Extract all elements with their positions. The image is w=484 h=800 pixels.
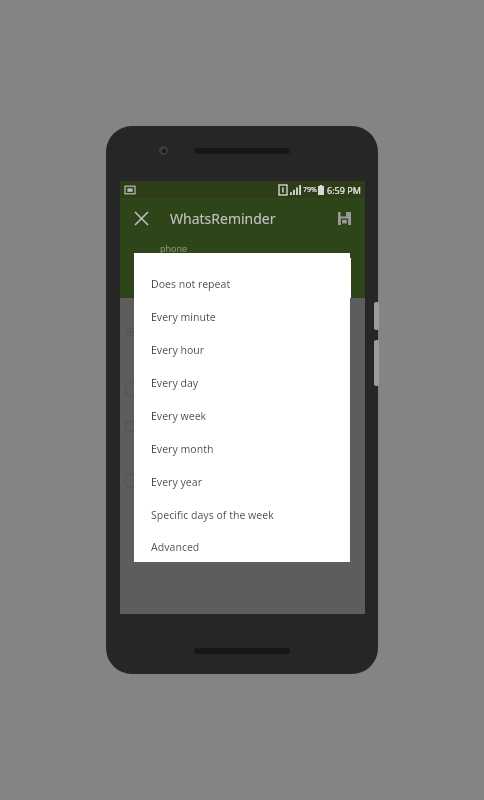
button[interactable]: Every minute xyxy=(134,300,350,333)
button[interactable]: Specific days of the week xyxy=(134,498,350,531)
button[interactable]: Save xyxy=(331,205,357,231)
staticText: Every day xyxy=(151,376,199,390)
staticText: Every hour xyxy=(151,343,205,357)
button[interactable]: Every hour xyxy=(134,333,350,366)
staticText: Every week xyxy=(151,409,207,423)
button[interactable]: Close xyxy=(128,205,154,231)
staticText: Every year xyxy=(151,475,203,489)
staticText: Every minute xyxy=(151,310,216,324)
staticText: Specific days of the week xyxy=(151,508,274,522)
staticText: Every month xyxy=(151,442,214,456)
staticText: 79% xyxy=(303,185,317,195)
staticText: phone xyxy=(160,242,188,254)
button[interactable]: Every day xyxy=(134,366,350,399)
staticText: Advanced xyxy=(151,540,200,554)
button[interactable]: Advanced xyxy=(134,531,350,562)
button[interactable]: Every year xyxy=(134,465,350,498)
staticText: 6:59 PM xyxy=(327,184,361,196)
staticText: WhatsReminder xyxy=(170,209,276,228)
button[interactable]: Does not repeat xyxy=(134,267,350,300)
staticText: Does not repeat xyxy=(151,277,231,291)
button[interactable]: Every week xyxy=(134,399,350,432)
button[interactable]: Every month xyxy=(134,432,350,465)
